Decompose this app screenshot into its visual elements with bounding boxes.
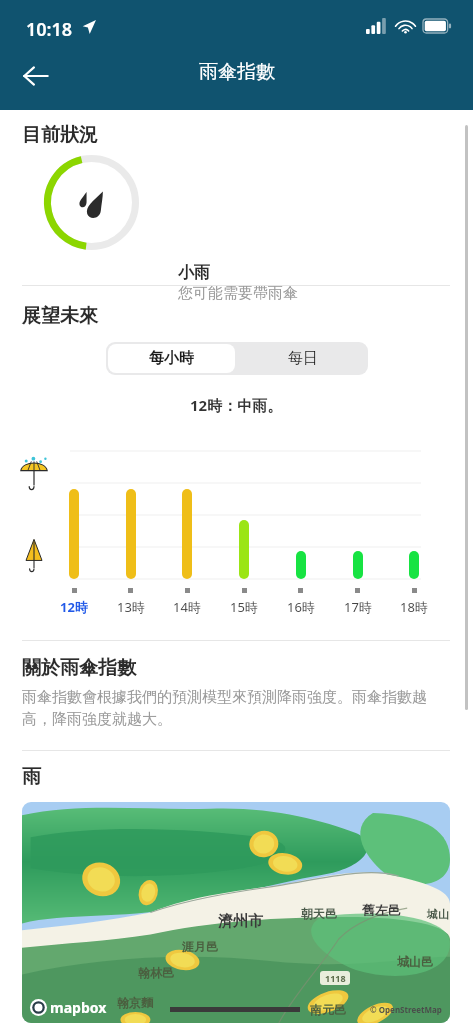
- staticText: 濟州市: [218, 912, 263, 931]
- button[interactable]: 17時: [332, 598, 384, 616]
- staticText: 翰林邑: [138, 965, 174, 980]
- staticText: 城山: [427, 907, 449, 921]
- staticText: 高，降雨強度就越大。: [22, 710, 172, 729]
- button[interactable]: Back: [12, 52, 60, 100]
- staticText: mapbox: [50, 998, 107, 1017]
- button[interactable]: 15時: [218, 598, 270, 616]
- staticText: 14時: [173, 598, 201, 616]
- staticText: 16時: [287, 598, 315, 616]
- staticText: 涯月邑: [182, 939, 218, 954]
- staticText: 17時: [344, 598, 372, 616]
- staticText: 南元邑: [310, 1002, 346, 1017]
- staticText: 每小時: [149, 349, 194, 368]
- staticText: 雨: [22, 765, 41, 789]
- staticText: 雨傘指數會根據我們的預測模型來預測降雨強度。雨傘指數越: [22, 688, 427, 707]
- button[interactable]: 16時: [275, 598, 327, 616]
- staticText: 每日: [288, 349, 318, 368]
- staticText: 12時：中雨。: [190, 395, 283, 415]
- button[interactable]: Rain radar map: [22, 802, 450, 1023]
- staticText: 12時: [60, 598, 88, 616]
- staticText: 舊左邑: [362, 902, 401, 918]
- staticText: 13時: [117, 598, 145, 616]
- staticText: 朝天邑: [301, 906, 337, 921]
- staticText: 您可能需要帶雨傘: [178, 284, 298, 303]
- staticText: 15時: [230, 598, 258, 616]
- button[interactable]: 18時: [388, 598, 440, 616]
- staticText: 1118: [325, 972, 346, 984]
- staticText: 城山邑: [397, 954, 433, 969]
- staticText: 18時: [400, 598, 428, 616]
- staticText: 展望未來: [22, 304, 98, 328]
- staticText: 目前狀況: [22, 123, 98, 147]
- button[interactable]: 14時: [161, 598, 213, 616]
- staticText: 雨傘指數: [199, 60, 275, 84]
- staticText: 翰京麵: [117, 995, 153, 1010]
- button[interactable]: 每日: [237, 342, 368, 375]
- button[interactable]: 13時: [105, 598, 157, 616]
- staticText: 關於雨傘指數: [22, 656, 136, 680]
- staticText: 10:18: [26, 17, 73, 42]
- button[interactable]: 每小時: [108, 344, 235, 373]
- staticText: 小雨: [178, 263, 210, 283]
- staticText: © OpenStreetMap: [370, 1004, 442, 1015]
- button[interactable]: 12時: [48, 598, 100, 616]
